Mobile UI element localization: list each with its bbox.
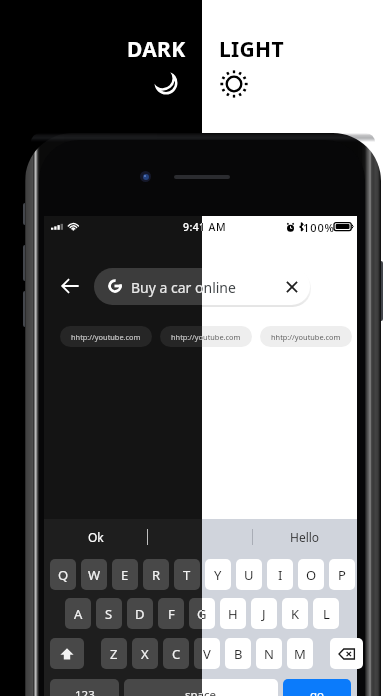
button[interactable]: P (329, 559, 355, 590)
button[interactable] (148, 519, 252, 555)
button[interactable]: M (287, 638, 313, 669)
button[interactable]: E (112, 559, 138, 590)
staticText: W (88, 566, 101, 584)
button[interactable]: Y (205, 559, 231, 590)
button[interactable]: hhtp://youtube.com (160, 326, 252, 347)
button[interactable]: Hello (253, 519, 357, 555)
button[interactable]: X (132, 638, 158, 669)
button[interactable]: Delete (330, 638, 363, 669)
button[interactable]: hhtp://youtube.com (60, 326, 152, 347)
staticText: J (262, 605, 266, 623)
staticText: E (121, 566, 129, 584)
button[interactable]: L (313, 598, 339, 629)
button[interactable]: space (124, 679, 278, 696)
button[interactable]: K (282, 598, 308, 629)
staticText: S (105, 605, 113, 623)
button[interactable]: U (236, 559, 262, 590)
staticText: K (291, 605, 300, 623)
button[interactable]: G (189, 598, 215, 629)
button[interactable]: B (225, 638, 251, 669)
button[interactable]: R (143, 559, 169, 590)
staticText: Z (110, 645, 118, 663)
button[interactable]: Q (50, 559, 76, 590)
button[interactable]: Hello (253, 519, 357, 555)
button[interactable]: Y (205, 559, 231, 590)
staticText: V (203, 645, 211, 663)
staticText: hhtp://youtube.com (171, 332, 241, 342)
button[interactable]: Shift (50, 638, 84, 669)
button[interactable]: Buy a car online (94, 268, 310, 305)
button[interactable]: W (81, 559, 107, 590)
button[interactable]: D (127, 598, 153, 629)
button[interactable]: hhtp://youtube.com (160, 326, 252, 347)
button[interactable]: Ok (44, 519, 147, 555)
button[interactable]: M (287, 638, 313, 669)
button[interactable]: E (112, 559, 138, 590)
button[interactable]: go (283, 679, 351, 696)
button[interactable]: N (256, 638, 282, 669)
staticText: C (172, 645, 181, 663)
button[interactable]: Q (50, 559, 76, 590)
button[interactable]: U (236, 559, 262, 590)
button[interactable]: hhtp://youtube.com (260, 326, 352, 347)
button[interactable]: S (96, 598, 122, 629)
button[interactable]: T (174, 559, 200, 590)
button[interactable]: J (251, 598, 277, 629)
staticText: space (185, 687, 217, 696)
button[interactable]: Z (101, 638, 127, 669)
staticText: Hello (290, 529, 320, 545)
staticText: hhtp://youtube.com (71, 332, 141, 342)
staticText: L (323, 605, 330, 623)
button[interactable]: O (298, 559, 324, 590)
button[interactable]: Delete (330, 638, 363, 669)
button[interactable]: B (225, 638, 251, 669)
button[interactable]: Ok (44, 519, 147, 555)
button[interactable]: H (220, 598, 246, 629)
staticText: S (105, 605, 113, 623)
button[interactable]: C (163, 638, 189, 669)
button[interactable]: 123 (50, 679, 119, 696)
button[interactable]: L (313, 598, 339, 629)
button[interactable]: G (189, 598, 215, 629)
button[interactable]: T (174, 559, 200, 590)
button[interactable] (148, 519, 252, 555)
staticText: B (234, 645, 243, 663)
button[interactable]: R (143, 559, 169, 590)
button[interactable]: C (163, 638, 189, 669)
staticText: T (183, 566, 191, 584)
button[interactable]: V (194, 638, 220, 669)
staticText: F (168, 605, 175, 623)
button[interactable]: I (267, 559, 293, 590)
staticText: Q (58, 566, 69, 584)
button[interactable]: Shift (50, 638, 84, 669)
button[interactable]: X (132, 638, 158, 669)
button[interactable]: F (158, 598, 184, 629)
button[interactable]: Z (101, 638, 127, 669)
staticText: I (278, 566, 283, 584)
button[interactable]: H (220, 598, 246, 629)
button[interactable]: F (158, 598, 184, 629)
button[interactable]: 123 (50, 679, 119, 696)
button[interactable]: D (127, 598, 153, 629)
button[interactable]: N (256, 638, 282, 669)
staticText: Q (58, 566, 69, 584)
button[interactable]: space (124, 679, 278, 696)
button[interactable]: O (298, 559, 324, 590)
button[interactable]: Back (53, 269, 87, 303)
button[interactable]: A (65, 598, 91, 629)
button[interactable]: S (96, 598, 122, 629)
button[interactable]: I (267, 559, 293, 590)
button[interactable]: V (194, 638, 220, 669)
staticText: space (185, 687, 217, 696)
button[interactable]: hhtp://youtube.com (60, 326, 152, 347)
staticText: Hello (290, 529, 320, 545)
button[interactable]: Buy a car online (94, 268, 310, 305)
button[interactable]: W (81, 559, 107, 590)
button[interactable]: hhtp://youtube.com (260, 326, 352, 347)
button[interactable]: P (329, 559, 355, 590)
button[interactable]: Back (53, 269, 87, 303)
button[interactable]: go (283, 679, 351, 696)
button[interactable]: K (282, 598, 308, 629)
button[interactable]: J (251, 598, 277, 629)
button[interactable]: A (65, 598, 91, 629)
